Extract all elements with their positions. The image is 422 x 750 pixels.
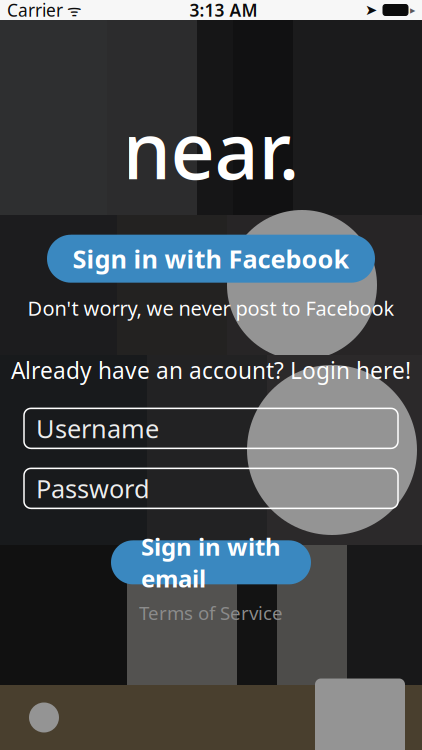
- staticText: ᯤ: [63, 0, 82, 21]
- staticText: Carrier: [7, 0, 63, 21]
- staticText: near.: [122, 98, 299, 201]
- staticText: Don't worry, we never post to Facebook: [27, 295, 394, 321]
- button[interactable]: Sign in with email: [111, 540, 311, 584]
- staticText: Already have an account? Login here!: [11, 355, 411, 385]
- button[interactable]: Password: [24, 468, 398, 508]
- staticText: Sign in with Facebook: [72, 242, 349, 275]
- staticText: Username: [36, 411, 159, 445]
- staticText: Terms of Service: [139, 600, 283, 625]
- staticText: 3:13 AM: [189, 0, 257, 21]
- staticText: ▸: [410, 4, 415, 16]
- button[interactable]: Username: [24, 408, 398, 448]
- staticText: Password: [36, 471, 150, 505]
- staticText: ➤: [365, 2, 377, 18]
- button[interactable]: Sign in with Facebook: [47, 235, 375, 283]
- button[interactable]: Terms of Service: [131, 598, 291, 627]
- staticText: Sign in with email: [141, 530, 281, 594]
